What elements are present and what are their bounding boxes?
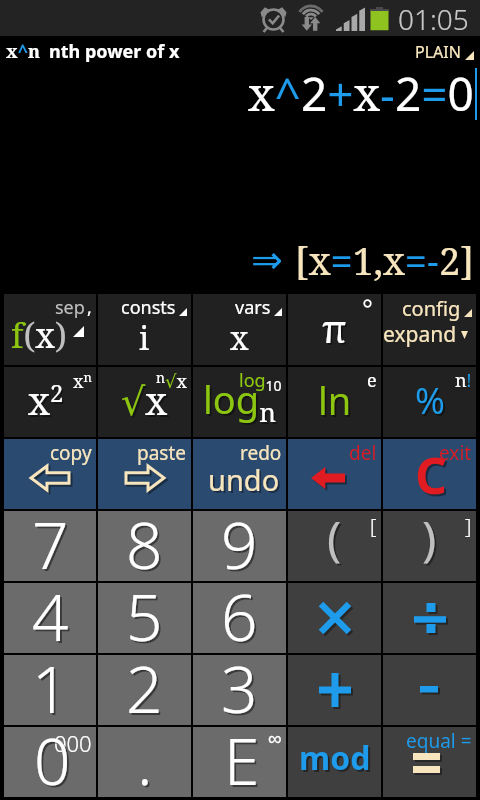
staticText: ( (329, 507, 344, 572)
button[interactable]: log (193, 367, 286, 437)
staticText: 9 (221, 501, 258, 571)
button[interactable]: multiply (288, 583, 381, 653)
button[interactable]: exponent (193, 727, 286, 797)
staticText: logn (203, 373, 276, 430)
button[interactable]: percent (383, 367, 476, 437)
staticText: x2 (30, 376, 66, 428)
staticText: √x (123, 376, 170, 428)
button[interactable]: square root (98, 367, 191, 437)
staticText: 8 (126, 501, 163, 571)
staticText: 6 (223, 575, 260, 645)
staticText: ( (327, 505, 342, 570)
staticText: C (417, 443, 450, 511)
staticText: redo (240, 440, 282, 466)
button[interactable]: undo (193, 439, 286, 509)
staticText: x (230, 316, 249, 360)
staticText: x^n (6, 39, 40, 64)
staticText: 3 (223, 647, 260, 717)
button[interactable]: 9 (193, 511, 286, 581)
button[interactable]: decimal point (98, 727, 191, 797)
button[interactable]: open paren (288, 511, 381, 581)
button[interactable]: constants (98, 294, 191, 365)
staticText: C (415, 441, 448, 509)
staticText: exit (439, 440, 472, 466)
staticText: 9 (223, 503, 260, 573)
other: Signal strength (336, 6, 367, 31)
button[interactable]: close paren (383, 511, 476, 581)
staticText: paste (137, 440, 187, 466)
button[interactable]: x squared (4, 367, 96, 437)
staticText: ] (465, 512, 472, 539)
staticText: del (349, 440, 377, 466)
staticText: 01:05 (398, 0, 469, 36)
button[interactable]: copy (4, 439, 96, 509)
button[interactable]: 3 (193, 655, 286, 725)
button[interactable]: pi (288, 294, 381, 365)
staticText: % (417, 378, 447, 427)
staticText: . (139, 719, 155, 789)
staticText: 0 (36, 719, 73, 789)
button[interactable]: config (383, 294, 476, 365)
button[interactable]: divide (383, 583, 476, 653)
staticText: xn (73, 368, 92, 393)
button[interactable]: clear (383, 439, 476, 509)
staticText: f(x) (11, 312, 67, 358)
staticText: ∞ (268, 728, 282, 749)
staticText: log10 (239, 368, 282, 395)
staticText: logn (205, 375, 278, 432)
staticText: ) (422, 505, 437, 570)
staticText: x2 (28, 374, 64, 426)
staticText: vars (235, 295, 271, 320)
button[interactable]: 4 (4, 583, 96, 653)
button[interactable]: minus (383, 655, 476, 725)
staticText: n√x (156, 368, 187, 393)
button[interactable]: 8 (98, 511, 191, 581)
staticText: 7 (34, 503, 71, 573)
button[interactable]: 7 (4, 511, 96, 581)
staticText: [x=1,x=-2] (295, 234, 474, 286)
staticText: ⇒ (251, 238, 283, 282)
staticText: 8 (128, 503, 165, 573)
staticText: nth power of x (49, 39, 180, 64)
staticText: π (322, 302, 347, 354)
staticText: E (226, 719, 262, 789)
button[interactable]: 0 (4, 727, 96, 797)
button[interactable]: delete (288, 439, 381, 509)
button[interactable]: f(x) (4, 294, 96, 365)
staticText: PLAIN (415, 41, 461, 63)
button[interactable]: mod (288, 727, 381, 797)
other: Alarm (260, 6, 287, 31)
button[interactable]: 2 (98, 655, 191, 725)
staticText: copy (50, 440, 92, 466)
button[interactable]: paste (98, 439, 191, 509)
staticText: 5 (128, 575, 165, 645)
staticText: 1 (32, 645, 69, 715)
staticText: ln (320, 376, 354, 428)
staticText: 6 (221, 573, 258, 643)
staticText: 3 (221, 645, 258, 715)
button[interactable]: 6 (193, 583, 286, 653)
staticText: n! (455, 368, 472, 393)
other: Wi-Fi (297, 6, 325, 31)
staticText: consts (121, 295, 176, 320)
staticText: x^2+x-2=0 (248, 62, 474, 125)
staticText: e (367, 368, 377, 393)
staticText: 5 (126, 573, 163, 643)
button[interactable]: plus (288, 655, 381, 725)
button[interactable]: variables (193, 294, 286, 365)
staticText: ) (424, 507, 439, 572)
staticText: mod (301, 738, 373, 782)
button[interactable]: 5 (98, 583, 191, 653)
button[interactable]: equals (383, 727, 476, 797)
button[interactable]: 1 (4, 655, 96, 725)
staticText: mod (299, 736, 371, 780)
staticText: , (87, 295, 92, 320)
staticText: 2 (126, 645, 163, 715)
staticText: undo (208, 460, 280, 499)
staticText: . (137, 717, 153, 787)
staticText: expand (383, 320, 457, 349)
staticText: [ (370, 512, 377, 539)
button[interactable]: natural log (288, 367, 381, 437)
staticText: π (324, 304, 349, 356)
staticText: 7 (32, 501, 69, 571)
